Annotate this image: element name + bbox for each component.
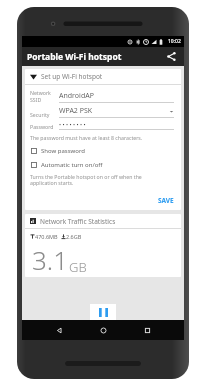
staticText: GB [69,258,87,276]
button[interactable]: Home [96,323,110,337]
button[interactable]: SAVE [151,194,181,207]
staticText: Password [30,123,56,130]
staticText: 10:02 [168,38,181,45]
staticText: AndroidAP [59,91,174,101]
staticText: Network Traffic Statistics [40,217,116,226]
staticText: SAVE [158,196,174,205]
staticText: Set up Wi-Fi hotspot [41,72,103,81]
staticText: WPA2 PSK [59,106,169,116]
button[interactable]: Recent apps [140,323,154,337]
staticText: The password must have at least 8 charac… [30,134,143,141]
staticText: Show password [41,147,85,155]
staticText: 470.6MB [35,233,58,240]
staticText: Network SSID [30,89,56,103]
staticText: Automatic turn on/off [41,161,103,169]
staticText: Portable Wi-Fi hotspot [27,51,164,63]
staticText: Security [30,111,56,118]
button[interactable]: Back [52,323,66,337]
staticText: 3.1 [32,242,69,277]
button[interactable]: Show password [25,146,181,156]
staticText: • • • • • • • • [59,121,174,128]
staticText: Turns the Portable hotspot on or off whe… [30,173,142,187]
button[interactable]: Share [164,49,179,64]
button[interactable]: Automatic turn on/off [25,160,181,170]
staticText: 2.6GB [66,233,82,240]
button[interactable]: Pause [90,304,116,320]
